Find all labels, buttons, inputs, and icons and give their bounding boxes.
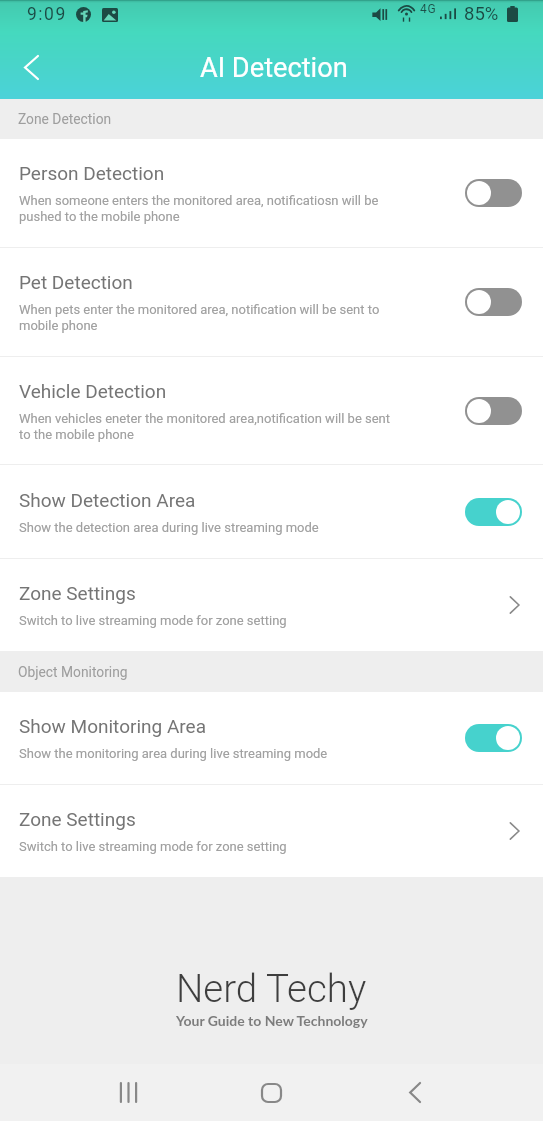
- button[interactable]: Recent apps: [57, 1064, 200, 1121]
- button[interactable]: Pet Detection: [0, 248, 543, 356]
- staticText: Show the monitoring area during live str…: [19, 746, 328, 761]
- staticText: Show the detection area during live stre…: [19, 520, 319, 535]
- button[interactable]: Zone Settings: [0, 785, 543, 877]
- staticText: Switch to live streaming mode for zone s…: [19, 839, 287, 854]
- button[interactable]: Person Detection: [0, 139, 543, 247]
- button[interactable]: Back: [9, 45, 53, 89]
- staticText: Your Guide to New Technology: [176, 1012, 368, 1029]
- button[interactable]: Switch on: [465, 498, 522, 526]
- button[interactable]: Vehicle Detection: [0, 357, 543, 464]
- button[interactable]: Show Monitoring Area: [0, 692, 543, 784]
- staticText: Zone Settings: [19, 582, 136, 604]
- button[interactable]: Zone Settings: [0, 559, 543, 651]
- staticText: AI Detection: [200, 52, 348, 84]
- staticText: When someone enters the monitored area, …: [19, 193, 379, 224]
- button[interactable]: Switch on: [465, 724, 522, 752]
- button[interactable]: Show Detection Area: [0, 465, 543, 558]
- staticText: Pet Detection: [19, 271, 133, 293]
- staticText: Show Detection Area: [19, 489, 196, 511]
- staticText: Zone Detection: [18, 111, 112, 127]
- staticText: Vehicle Detection: [19, 380, 167, 402]
- staticText: Show Monitoring Area: [19, 715, 206, 737]
- staticText: When vehicles eneter the monitored area,…: [19, 411, 391, 442]
- button[interactable]: Back: [343, 1064, 486, 1121]
- staticText: Person Detection: [19, 162, 165, 184]
- staticText: Switch to live streaming mode for zone s…: [19, 613, 287, 628]
- button[interactable]: Switch off: [465, 397, 522, 425]
- button[interactable]: Home: [200, 1064, 343, 1121]
- staticText: 9:09: [27, 4, 67, 25]
- staticText: Nerd Techy: [176, 966, 367, 1011]
- staticText: 85%: [464, 3, 499, 25]
- staticText: Zone Settings: [19, 808, 136, 830]
- staticText: Object Monitoring: [18, 664, 128, 680]
- staticText: 4G: [420, 2, 437, 16]
- button[interactable]: Switch off: [465, 288, 522, 316]
- staticText: When pets enter the monitored area, noti…: [19, 302, 380, 333]
- button[interactable]: Switch off: [465, 179, 522, 207]
